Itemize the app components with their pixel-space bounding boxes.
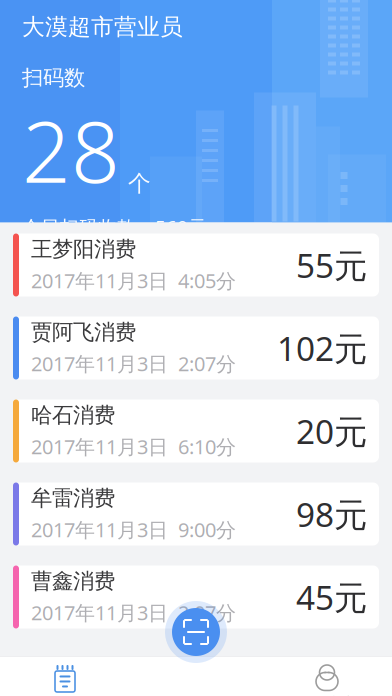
staticText: 102元	[277, 326, 367, 370]
button[interactable]: 牟雷消费	[13, 482, 379, 545]
button[interactable]: 曹鑫消费	[13, 565, 379, 628]
staticText: 28	[22, 93, 120, 206]
button[interactable]: 个人中心	[262, 656, 392, 696]
staticText: 20元	[296, 409, 367, 453]
staticText: 牟雷消费	[31, 485, 115, 511]
staticText: 扫码数	[22, 65, 85, 91]
staticText: 2017年11月3日 4:05分	[31, 267, 236, 294]
staticText: 45元	[296, 575, 367, 619]
staticText: 98元	[296, 492, 367, 536]
staticText: 55元	[296, 243, 367, 287]
staticText: 哈石消费	[31, 402, 115, 428]
staticText: 2017年11月3日 9:00分	[31, 516, 236, 543]
staticText: 2017年11月3日 2:07分	[31, 599, 236, 626]
button[interactable]: 王梦阳消费	[13, 233, 379, 296]
button[interactable]: 贾阿飞消费	[13, 316, 379, 379]
staticText: 个	[128, 169, 151, 197]
staticText: 今日扫码收款：560元	[22, 214, 207, 239]
staticText: 王梦阳消费	[31, 236, 136, 262]
staticText: 贾阿飞消费	[31, 319, 136, 345]
staticText: 大漠超市营业员	[22, 13, 183, 41]
button[interactable]: 扫码记录	[0, 656, 130, 696]
staticText: 曹鑫消费	[31, 568, 115, 594]
staticText: 2017年11月3日 6:10分	[31, 433, 236, 460]
button[interactable]: 哈石消费	[13, 399, 379, 462]
button[interactable]: 扫码	[163, 599, 229, 665]
staticText: 2017年11月3日 2:07分	[31, 350, 236, 377]
